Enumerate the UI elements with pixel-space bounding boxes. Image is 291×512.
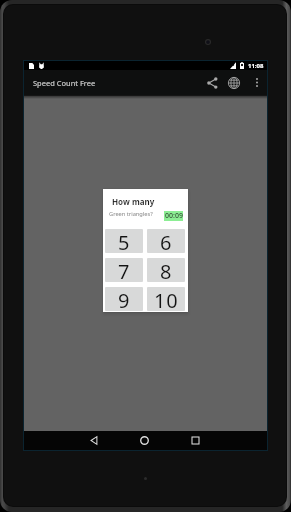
button[interactable]: Language xyxy=(222,70,246,95)
button[interactable]: More options xyxy=(246,70,267,95)
staticText: 11:08 xyxy=(248,62,264,70)
staticText: 9 xyxy=(118,287,131,311)
button[interactable]: 5 xyxy=(105,229,143,253)
staticText: How many xyxy=(112,196,155,207)
button[interactable]: 8 xyxy=(147,258,185,282)
staticText: 6 xyxy=(160,229,173,253)
staticText: 7 xyxy=(118,258,131,282)
staticText: 00:09 xyxy=(165,211,183,221)
staticText: 5 xyxy=(118,229,131,253)
button[interactable]: 9 xyxy=(105,287,143,311)
button[interactable]: Back xyxy=(80,431,107,450)
button[interactable]: Home xyxy=(131,431,158,450)
button[interactable]: 6 xyxy=(147,229,185,253)
button[interactable]: 7 xyxy=(105,258,143,282)
staticText: Speed Count Free xyxy=(33,78,96,88)
staticText: 8 xyxy=(160,258,173,282)
staticText: 10 xyxy=(154,287,179,311)
button[interactable]: Recents xyxy=(182,431,209,450)
button[interactable]: Share xyxy=(201,70,223,95)
button[interactable]: 10 xyxy=(147,287,185,311)
staticText: Green triangles? xyxy=(109,210,153,218)
